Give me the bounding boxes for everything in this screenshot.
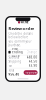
staticText: $56.40 [8, 73, 19, 76]
staticText: Shipping [8, 60, 21, 63]
staticText: Review order [8, 26, 34, 31]
staticText: Tax [8, 64, 11, 67]
staticText: ACME [21, 20, 28, 24]
button[interactable]: Pay now [24, 70, 38, 75]
staticText: Change [27, 50, 38, 54]
staticText: Pay now [25, 71, 37, 74]
staticText: $3.90 [29, 64, 38, 67]
staticText: Check the details below before [8, 32, 32, 39]
staticText: Total [8, 69, 14, 72]
button[interactable]: Visa ending 4218 [8, 49, 38, 55]
staticText: $48.00 [27, 56, 38, 59]
staticText: Subtotal [8, 56, 19, 59]
staticText: Visa ending 4218 [12, 47, 23, 57]
staticText: $4.50 [29, 60, 38, 63]
staticText: you confirm your purchase. [8, 40, 31, 47]
